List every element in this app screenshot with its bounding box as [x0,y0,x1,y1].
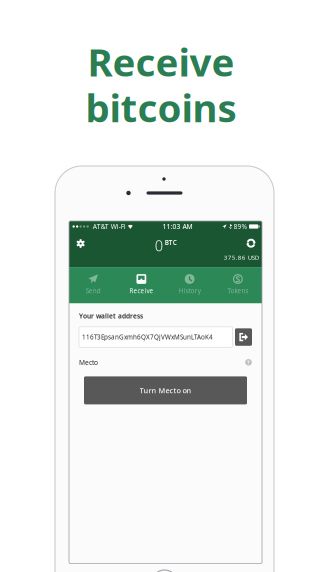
staticText: S [235,273,240,285]
staticText: Send [86,287,101,295]
button[interactable]: Receive [117,267,165,303]
button[interactable]: Share address [235,328,252,346]
button[interactable]: History [165,267,214,303]
staticText: 375.86 USD [224,253,259,262]
staticText: 89% [234,222,248,231]
button[interactable]: Refresh balance [241,234,260,253]
button[interactable]: Send [69,267,117,303]
staticText: Turn Mecto on [139,385,191,395]
staticText: Mecto [79,358,98,367]
staticText: History [179,287,201,295]
staticText: ? [247,358,250,366]
button[interactable]: S [214,267,262,303]
staticText: Your wallet address [79,311,143,320]
staticText: 11:03 AM [163,222,193,231]
staticText: BTC [165,238,177,247]
staticText: Tokens [227,287,248,295]
staticText: Receive [87,35,234,88]
staticText: bitcoins [85,81,236,133]
button[interactable]: Turn Mecto on [84,376,247,404]
staticText: 0 [155,236,163,256]
staticText: AT&T Wi-Fi [89,222,128,231]
staticText: 116T3EpsanGxmh6QX7QjVWxMSunLTAoK4 [82,333,213,341]
button[interactable]: About Mecto [245,359,252,366]
button[interactable]: Settings [70,233,91,254]
staticText: Receive [129,287,153,295]
